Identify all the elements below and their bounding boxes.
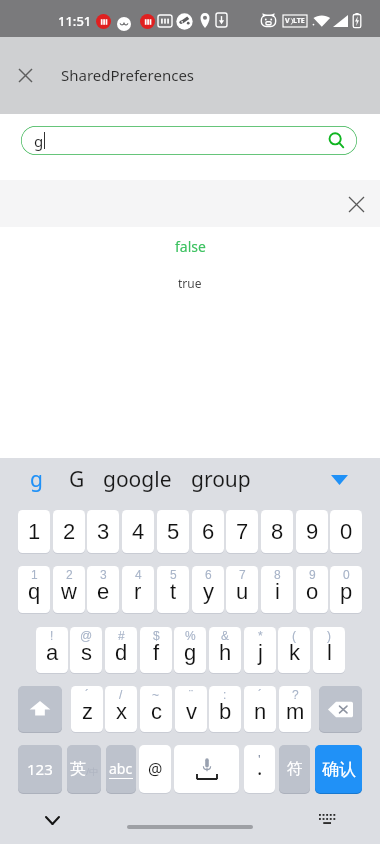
- button[interactable]: 0: [330, 510, 362, 553]
- staticText: y: [203, 579, 214, 604]
- button[interactable]: !: [36, 627, 68, 673]
- staticText: !: [50, 629, 54, 642]
- staticText: 确认: [322, 759, 356, 780]
- staticText: o: [306, 579, 319, 604]
- staticText: SharedPreferences: [61, 65, 195, 85]
- button[interactable]: ´: [71, 686, 103, 732]
- button[interactable]: abc: [106, 745, 136, 793]
- button[interactable]: 符: [279, 745, 310, 793]
- staticText: ': [258, 751, 261, 766]
- button[interactable]: 123: [18, 745, 62, 793]
- staticText: ´: [85, 688, 89, 701]
- button[interactable]: 8: [261, 566, 293, 613]
- staticText: 4: [132, 519, 145, 544]
- button[interactable]: ): [313, 627, 345, 673]
- staticText: abc: [109, 759, 133, 778]
- staticText: v: [186, 699, 197, 724]
- button[interactable]: ~: [140, 686, 172, 732]
- button[interactable]: 7: [226, 566, 258, 613]
- button[interactable]: 4: [122, 510, 154, 553]
- staticText: g: [184, 640, 197, 665]
- button[interactable]: 2: [53, 510, 85, 553]
- button[interactable]: 5: [157, 566, 189, 613]
- button[interactable]: Hide keyboard: [38, 806, 66, 834]
- staticText: &: [221, 629, 230, 642]
- button[interactable]: 确认: [315, 745, 362, 793]
- button[interactable]: (: [278, 627, 310, 673]
- button[interactable]: 0: [330, 566, 362, 613]
- button[interactable]: ´: [244, 686, 276, 732]
- staticText: i: [275, 579, 280, 604]
- button[interactable]: &: [209, 627, 241, 673]
- button[interactable]: %: [174, 627, 206, 673]
- staticText: d: [115, 640, 128, 665]
- button[interactable]: 1: [18, 566, 50, 613]
- staticText: %: [185, 629, 196, 642]
- staticText: b: [219, 699, 232, 724]
- staticText: ´: [258, 688, 262, 701]
- button[interactable]: @: [139, 745, 171, 793]
- staticText: @: [148, 758, 163, 780]
- button[interactable]: Close: [3, 53, 47, 97]
- button[interactable]: google: [103, 465, 172, 494]
- staticText: 5: [170, 568, 177, 581]
- button[interactable]: *: [244, 627, 276, 673]
- staticText: 6: [205, 568, 212, 581]
- staticText: 7: [239, 568, 246, 581]
- staticText: false: [175, 237, 206, 256]
- button[interactable]: 3: [87, 510, 119, 553]
- button[interactable]: 4: [122, 566, 154, 613]
- button[interactable]: 7: [226, 510, 258, 553]
- staticText: :: [223, 688, 227, 701]
- button[interactable]: More suggestions: [326, 467, 352, 493]
- button[interactable]: 5: [157, 510, 189, 553]
- staticText: true: [178, 275, 202, 291]
- button[interactable]: 8: [261, 510, 293, 553]
- staticText: 8: [271, 519, 284, 544]
- staticText: ·: [257, 760, 263, 787]
- button[interactable]: 3: [87, 566, 119, 613]
- button[interactable]: 1: [18, 510, 50, 553]
- button[interactable]: ?: [279, 686, 311, 732]
- staticText: 6: [202, 519, 215, 544]
- button[interactable]: ¨: [175, 686, 207, 732]
- staticText: ¨: [189, 688, 193, 701]
- staticText: w: [61, 579, 77, 604]
- button[interactable]: Clear: [338, 186, 374, 222]
- button[interactable]: G: [69, 465, 85, 494]
- button[interactable]: Backspace: [319, 686, 362, 732]
- staticText: LTE: [293, 16, 305, 26]
- button[interactable]: g: [30, 465, 43, 494]
- button[interactable]: 9: [296, 566, 328, 613]
- button[interactable]: group: [191, 465, 251, 494]
- staticText: 3: [100, 568, 107, 581]
- button[interactable]: Shift: [18, 686, 62, 732]
- button[interactable]: 2: [53, 566, 85, 613]
- staticText: 符: [287, 759, 303, 779]
- button[interactable]: $: [140, 627, 172, 673]
- button[interactable]: /: [105, 686, 137, 732]
- staticText: 3: [97, 519, 110, 544]
- staticText: c: [151, 699, 162, 724]
- staticText: 9: [309, 568, 316, 581]
- button[interactable]: 6: [192, 566, 224, 613]
- staticText: 2: [66, 568, 73, 581]
- button[interactable]: 6: [192, 510, 224, 553]
- staticText: 0: [343, 568, 350, 581]
- staticText: ?: [292, 688, 299, 701]
- staticText: u: [236, 579, 249, 604]
- staticText: h: [219, 640, 232, 665]
- button[interactable]: 9: [296, 510, 328, 553]
- button[interactable]: g: [21, 126, 357, 155]
- button[interactable]: Space: [174, 745, 239, 793]
- staticText: @: [80, 629, 93, 642]
- staticText: ~: [152, 688, 160, 701]
- staticText: 9: [306, 519, 319, 544]
- staticText: m: [286, 699, 305, 724]
- button[interactable]: 英: [67, 745, 101, 793]
- button[interactable]: Switch keyboard: [313, 806, 341, 834]
- button[interactable]: ': [244, 745, 275, 793]
- button[interactable]: @: [70, 627, 102, 673]
- button[interactable]: #: [105, 627, 137, 673]
- button[interactable]: :: [209, 686, 241, 732]
